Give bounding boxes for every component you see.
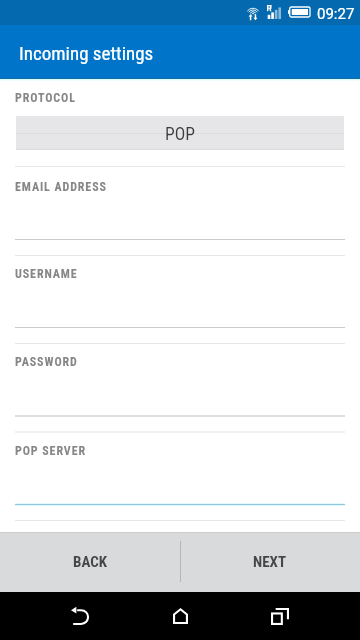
staticText: NEXT xyxy=(253,553,287,571)
button[interactable]: POP xyxy=(16,116,344,150)
staticText: USERNAME xyxy=(15,267,78,281)
staticText: EMAIL ADDRESS xyxy=(15,180,107,194)
staticText: Incoming settings xyxy=(19,42,154,64)
button[interactable]: Home xyxy=(156,592,204,640)
staticText: POP SERVER xyxy=(15,444,86,458)
staticText: BACK xyxy=(73,553,108,571)
button[interactable]: BACK xyxy=(0,532,180,592)
button[interactable]: Recent apps xyxy=(256,592,304,640)
staticText: PASSWORD xyxy=(15,355,78,369)
staticText: POP xyxy=(165,124,195,145)
staticText: PROTOCOL xyxy=(15,91,76,105)
staticText: 09:27 xyxy=(317,5,355,23)
button[interactable]: Back xyxy=(56,592,104,640)
button[interactable]: NEXT xyxy=(180,532,360,592)
